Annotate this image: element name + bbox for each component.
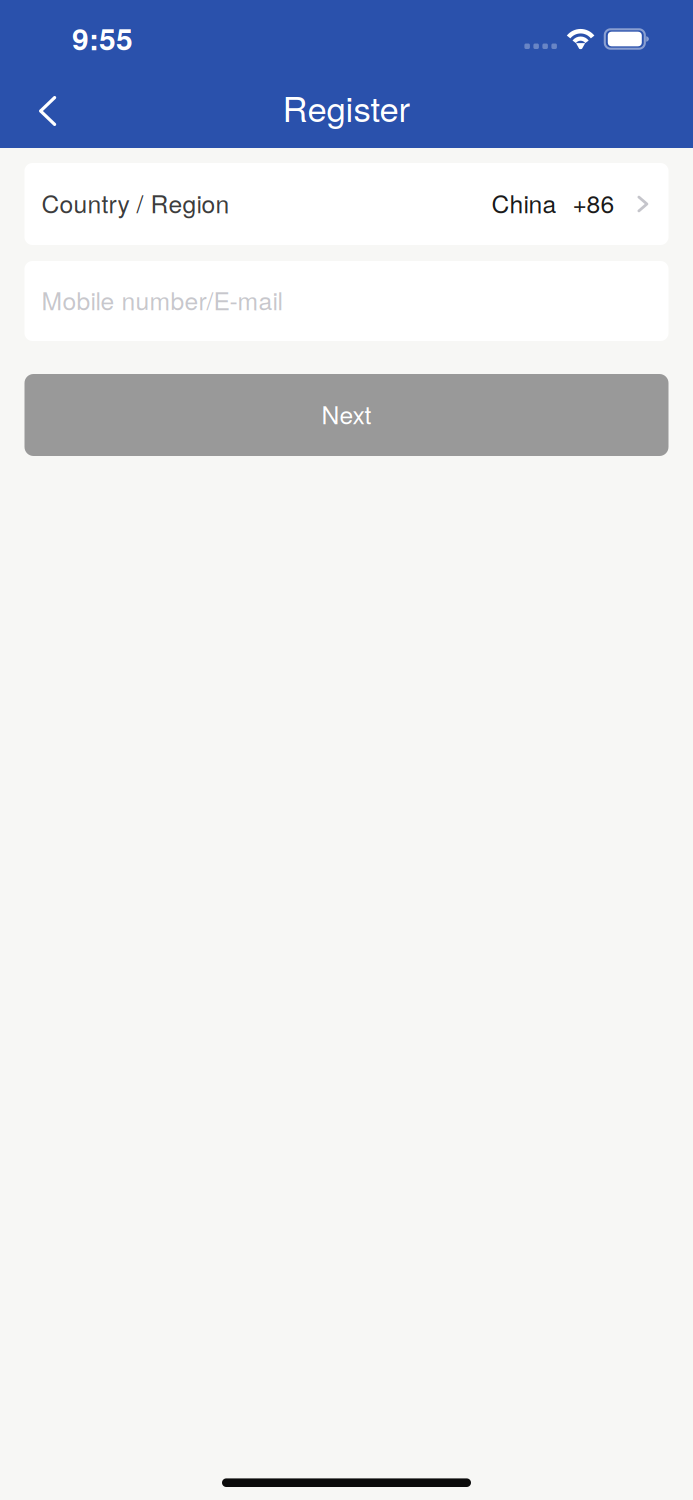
staticText: Mobile number/E-mail bbox=[41, 282, 282, 317]
button[interactable]: Mobile number/E-mail bbox=[24, 261, 668, 341]
staticText: China bbox=[491, 185, 556, 220]
button[interactable]: Next bbox=[24, 374, 668, 456]
button[interactable]: Country / Region bbox=[24, 163, 668, 245]
staticText: +86 bbox=[572, 185, 614, 220]
staticText: Next bbox=[321, 396, 371, 431]
staticText: Register bbox=[282, 82, 410, 132]
button[interactable]: Back bbox=[0, 82, 103, 140]
staticText: Country / Region bbox=[41, 185, 229, 220]
staticText: 9:55 bbox=[72, 16, 133, 59]
